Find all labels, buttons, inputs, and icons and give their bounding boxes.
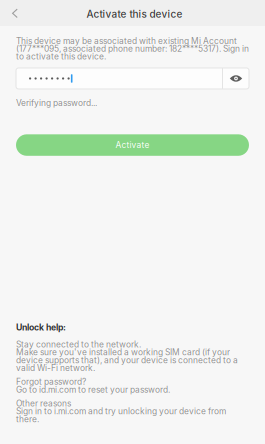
button[interactable]: Show password	[223, 68, 249, 89]
button[interactable]: Activate	[16, 134, 249, 156]
staticText: Stay connected to the network. Make sure…	[16, 341, 238, 372]
staticText: Verifying password...	[16, 99, 97, 107]
staticText: Forgot password? Go to id.mi.com to rese…	[16, 378, 170, 394]
staticText: Other reasons Sign in to i.mi.com and tr…	[16, 399, 226, 423]
staticText: Activate	[115, 141, 149, 149]
staticText: This device may be associated with exist…	[16, 37, 249, 60]
button[interactable]: Back	[0, 0, 28, 27]
staticText: Unlock help:	[16, 322, 66, 333]
staticText: Activate this device	[86, 8, 182, 20]
